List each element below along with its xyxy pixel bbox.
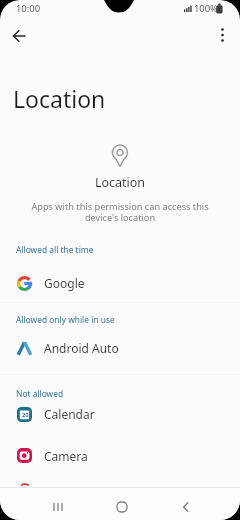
button[interactable] (6, 23, 32, 49)
staticText: Allowed only while in use (16, 314, 115, 325)
button[interactable] (166, 493, 206, 520)
staticText: Android Auto (44, 340, 119, 356)
button[interactable] (102, 493, 142, 520)
staticText: Allowed all the time (16, 244, 94, 255)
button[interactable]: Camera (0, 435, 240, 476)
staticText: Calendar (44, 406, 95, 422)
button[interactable] (38, 493, 78, 520)
staticText: 20 (22, 411, 29, 419)
button[interactable]: Google (0, 262, 240, 304)
button[interactable]: Android Auto (0, 327, 240, 369)
button[interactable]: 20 (0, 393, 240, 435)
staticText: Not allowed (16, 388, 64, 399)
staticText: Google (44, 275, 85, 291)
staticText: 100% (194, 2, 218, 15)
staticText: Location (13, 83, 106, 114)
staticText: 10:00 (16, 2, 41, 15)
staticText: Camera (44, 448, 88, 464)
staticText: Apps with this permission can access thi… (0, 200, 240, 223)
staticText: Location (0, 174, 240, 191)
button[interactable] (209, 23, 235, 49)
